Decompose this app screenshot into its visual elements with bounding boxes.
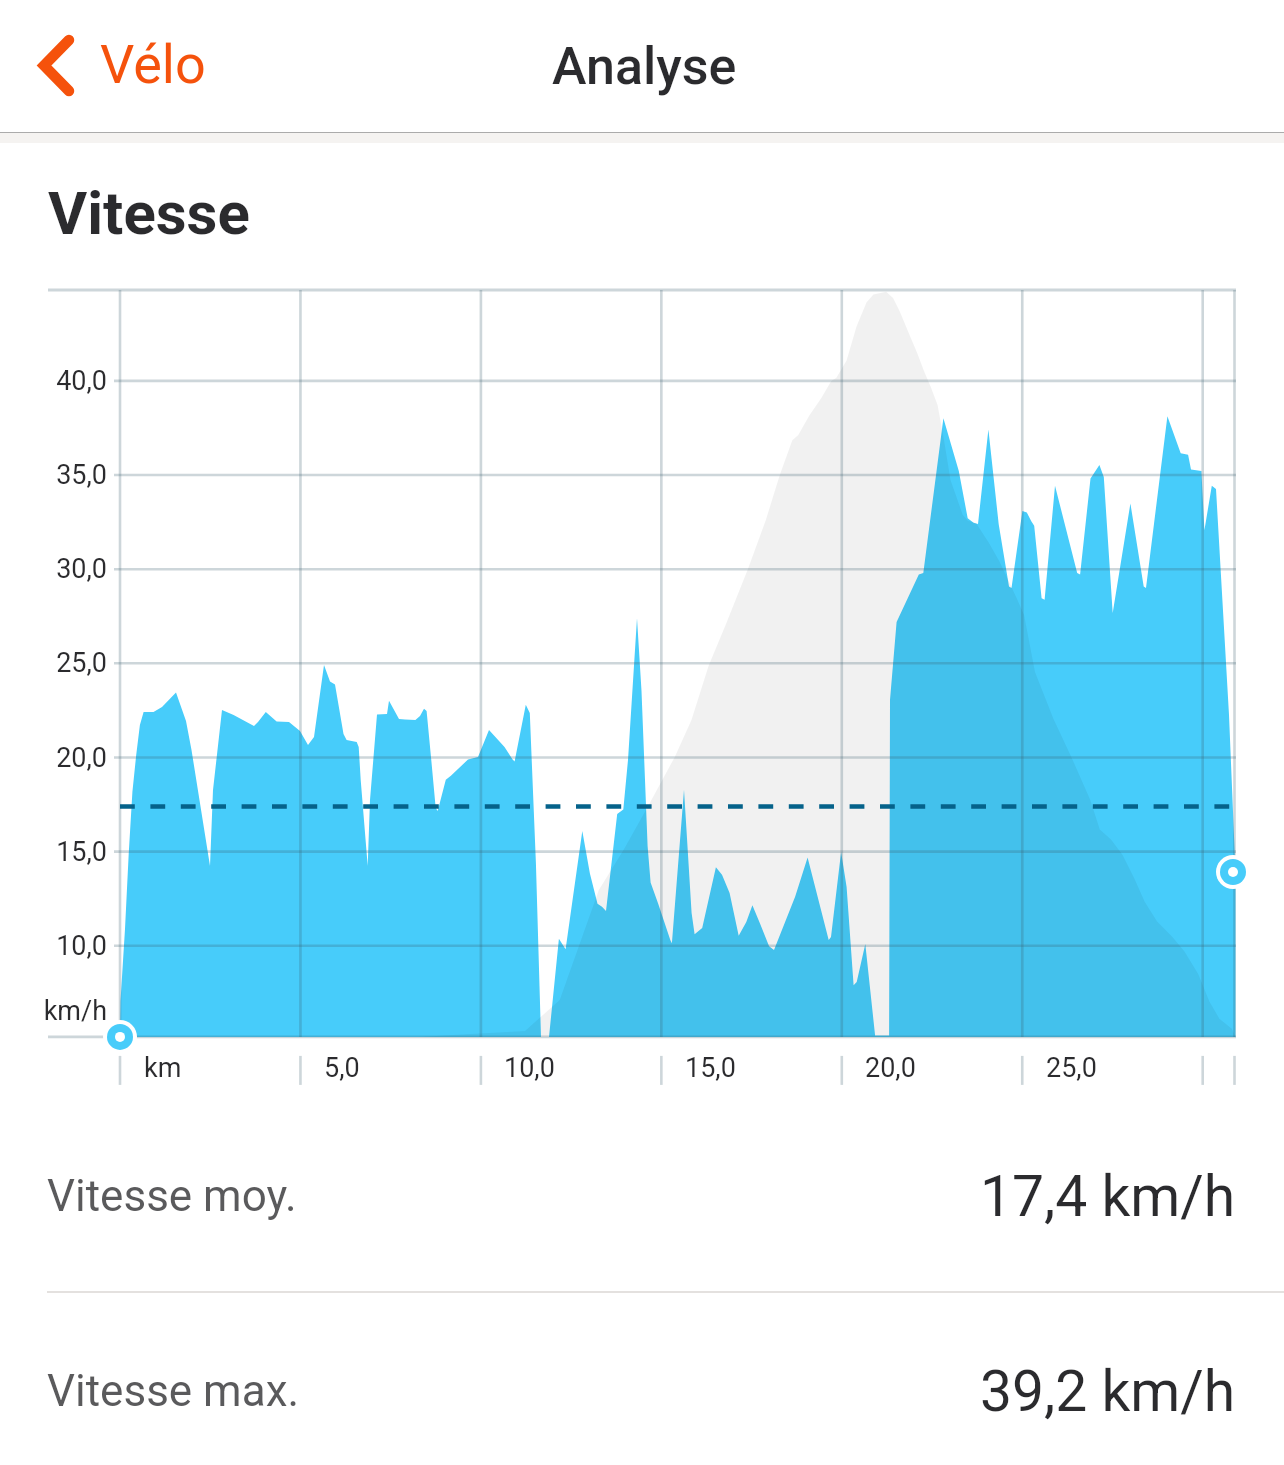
staticText: 25,0 bbox=[1046, 1052, 1097, 1084]
staticText: Vitesse max. bbox=[47, 1365, 300, 1417]
staticText: 25,0 bbox=[0, 647, 107, 679]
staticText: 35,0 bbox=[0, 459, 107, 491]
staticText: Vitesse moy. bbox=[47, 1170, 297, 1222]
staticText: km bbox=[144, 1052, 182, 1084]
staticText: 10,0 bbox=[0, 930, 107, 962]
staticText: 20,0 bbox=[0, 742, 107, 774]
staticText: Vitesse bbox=[48, 178, 250, 248]
staticText: 20,0 bbox=[865, 1052, 916, 1084]
staticText: 40,0 bbox=[0, 365, 107, 397]
staticText: 5,0 bbox=[324, 1052, 360, 1084]
staticText: 10,0 bbox=[504, 1052, 555, 1084]
staticText: Analyse bbox=[552, 36, 737, 97]
button[interactable]: Vitesse moy. bbox=[0, 1100, 1284, 1292]
staticText: 39,2 km/h bbox=[980, 1358, 1236, 1425]
staticText: Vélo bbox=[100, 33, 206, 96]
staticText: km/h bbox=[0, 995, 107, 1027]
button[interactable]: Retour Vélo bbox=[26, 16, 206, 116]
staticText: 17,4 km/h bbox=[980, 1163, 1236, 1230]
staticText: 15,0 bbox=[0, 836, 107, 868]
staticText: 15,0 bbox=[685, 1052, 736, 1084]
button[interactable]: Vitesse max. bbox=[0, 1295, 1284, 1465]
staticText: 30,0 bbox=[0, 553, 107, 585]
